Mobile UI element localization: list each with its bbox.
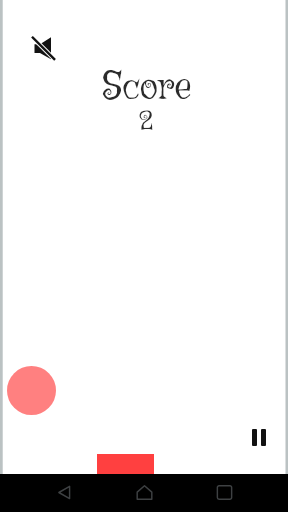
- button[interactable]: Sound off: [20, 25, 67, 72]
- button[interactable]: Pause: [243, 421, 275, 453]
- staticText: 2: [139, 105, 153, 139]
- button[interactable]: Home: [128, 473, 160, 511]
- button[interactable]: Back: [48, 473, 80, 511]
- staticText: Score: [102, 62, 192, 113]
- button[interactable]: Recents: [208, 473, 240, 511]
